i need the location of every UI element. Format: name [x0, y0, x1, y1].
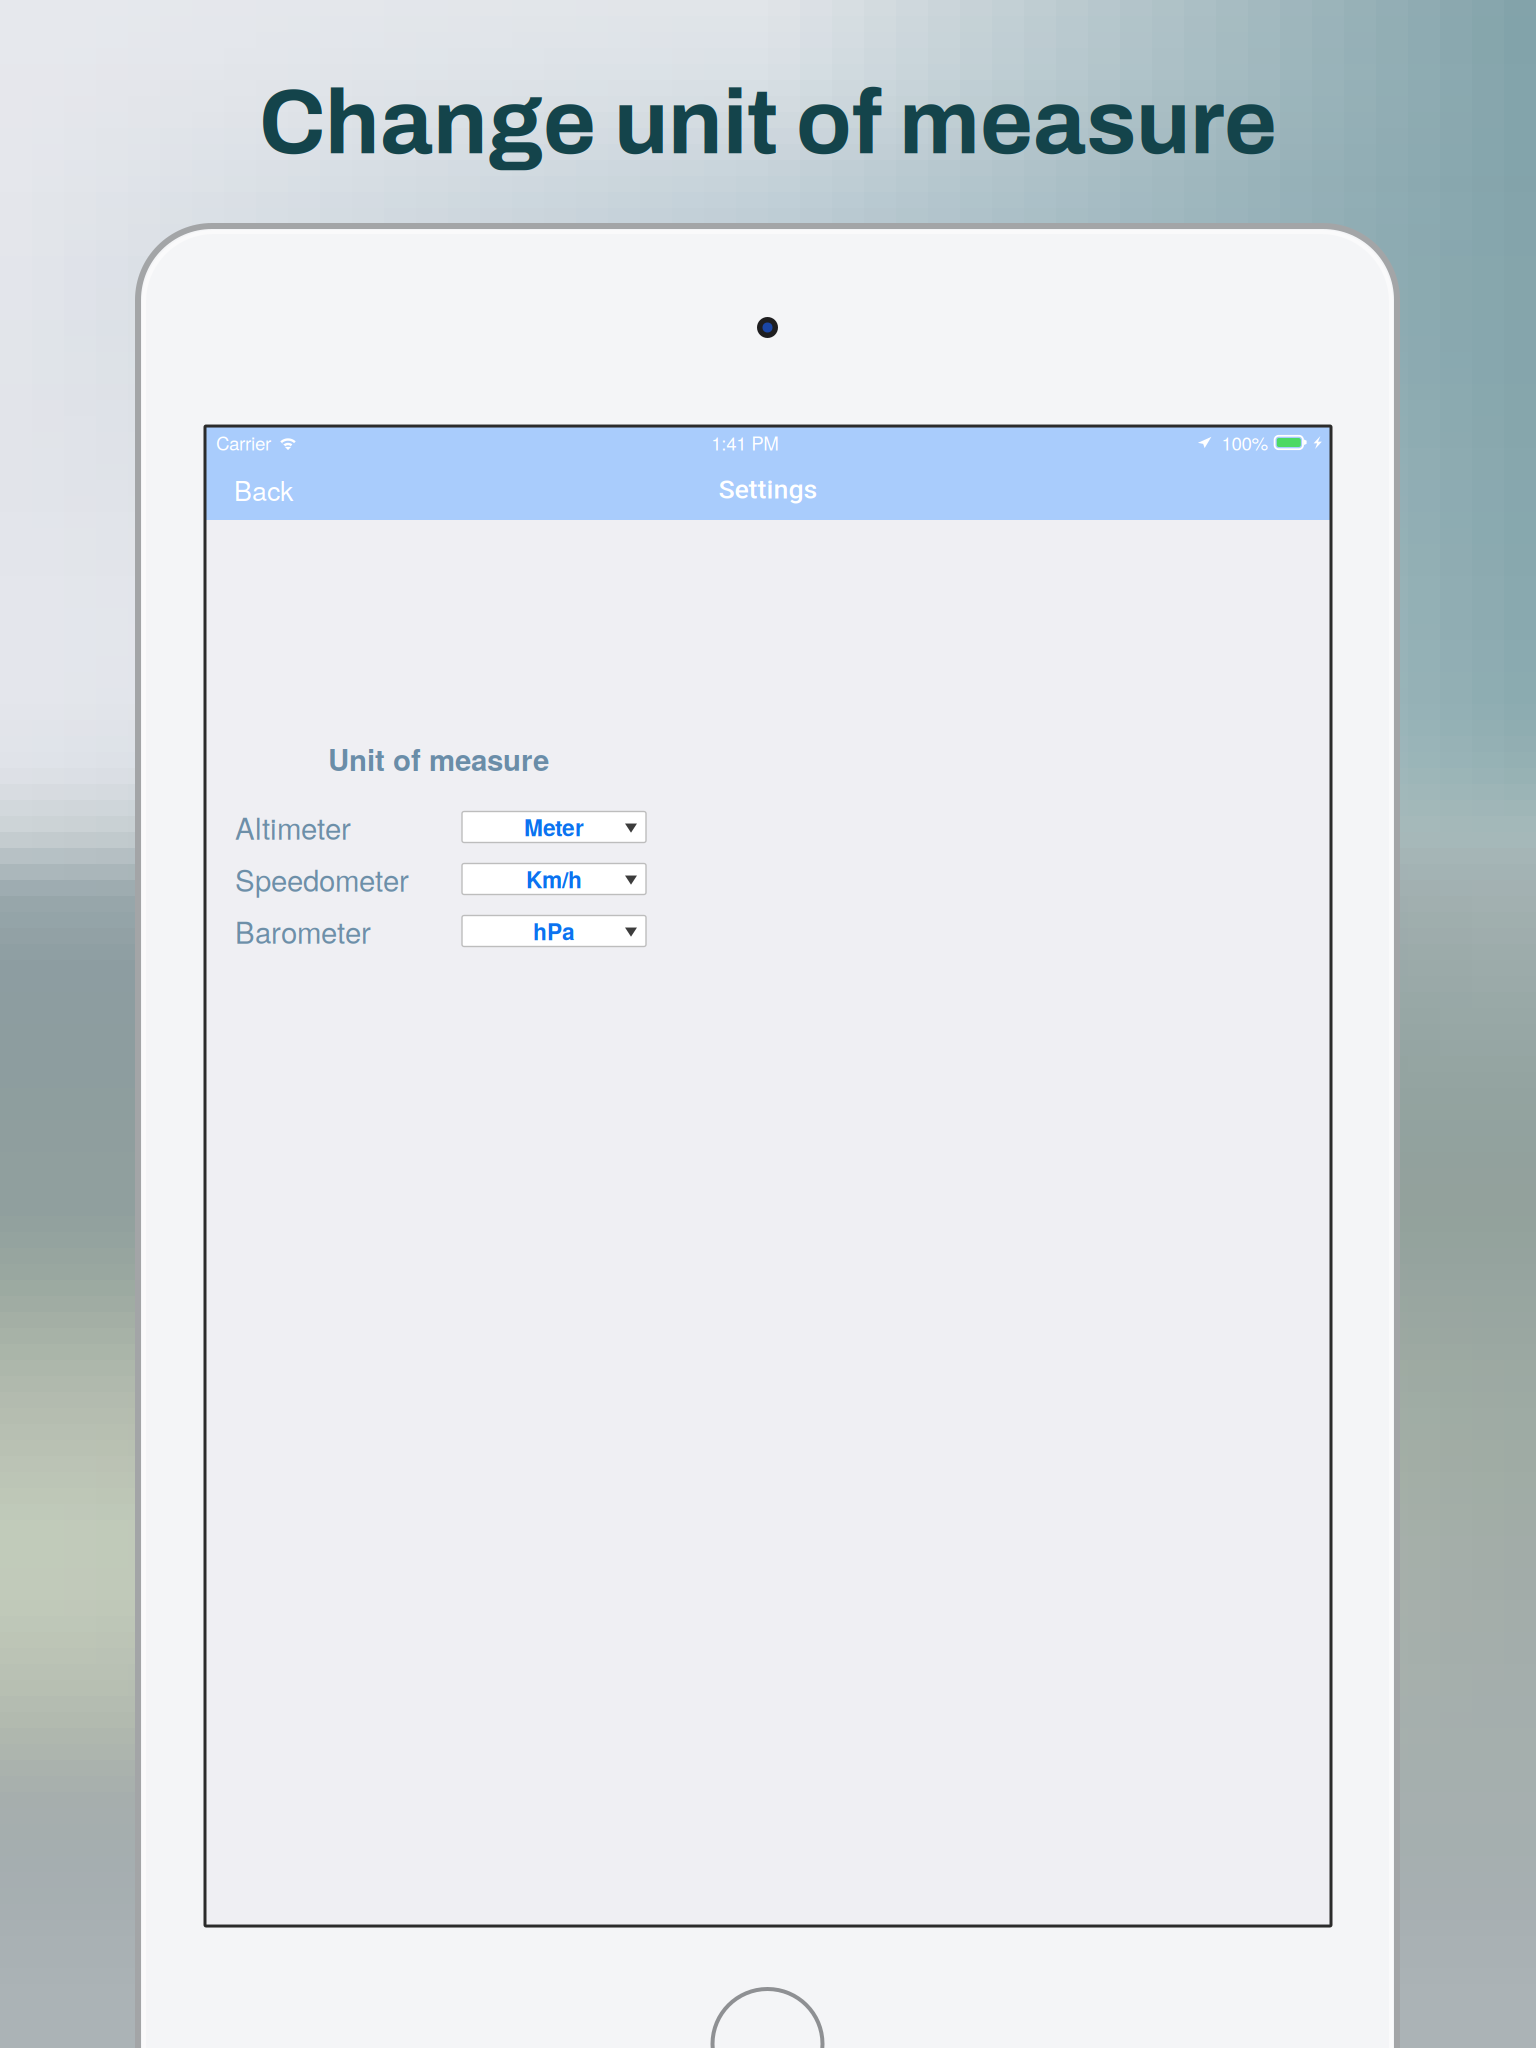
staticText: Carrier [216, 429, 271, 456]
staticText: 1:41 PM [711, 429, 779, 456]
staticText: Altimeter [235, 806, 351, 848]
staticText: Unit of measure [328, 738, 549, 780]
staticText: Meter [524, 811, 584, 843]
button[interactable]: Meter [462, 811, 646, 842]
button[interactable]: Back [205, 458, 317, 521]
staticText: Change unit of measure [259, 74, 1277, 172]
button[interactable]: Km/h [462, 863, 646, 894]
button[interactable]: hPa [462, 915, 646, 946]
staticText: hPa [533, 915, 575, 947]
staticText: Back [234, 470, 293, 509]
staticText: Km/h [526, 863, 582, 895]
staticText: Barometer [235, 910, 371, 952]
staticText: Speedometer [235, 858, 409, 900]
staticText: 100% [1222, 429, 1269, 456]
staticText: Settings [718, 474, 817, 505]
